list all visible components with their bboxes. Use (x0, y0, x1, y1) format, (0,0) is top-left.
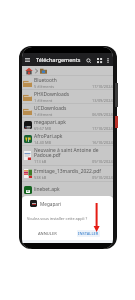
button[interactable]: UCDownloads (22, 104, 113, 117)
button[interactable]: linebet.apk (22, 182, 113, 196)
staticText: 09/10/2024 (92, 175, 113, 180)
button[interactable]: PHXDownloads (22, 90, 113, 103)
staticText: linebet.apk (34, 186, 60, 193)
staticText: Megapari (40, 201, 62, 207)
button[interactable]: AfroPari.apk (22, 132, 113, 145)
staticText: Bluetooth (34, 77, 57, 84)
staticText: 06/09/2024 (92, 112, 113, 117)
staticText: 5 éléments (34, 84, 55, 89)
staticText: 1 élément (34, 98, 53, 103)
staticText: 17/10/2024 (92, 126, 113, 131)
staticText: megapari.apk (34, 119, 66, 126)
button[interactable]: ANNULER (37, 230, 58, 237)
staticText: Téléchargements (36, 56, 81, 63)
staticText: 17/10/2024 (92, 84, 113, 89)
button[interactable]: View mode (95, 56, 103, 64)
button[interactable]: megapari.apk (22, 118, 113, 131)
staticText: 538 kB (34, 175, 47, 180)
button[interactable]: Ermitage_13mardis_2022.pdf (22, 166, 113, 181)
button[interactable]: More options (105, 57, 111, 63)
staticText: AfroPari.apk (34, 133, 63, 140)
staticText: 69.67 MB (34, 126, 52, 131)
staticText: 16/10/2024 (92, 140, 113, 145)
staticText: 14.40 MB (34, 140, 52, 145)
staticText: Voulez-vous installer cette appli ? (27, 216, 88, 221)
button[interactable]: Bluetooth (22, 76, 113, 89)
button[interactable]: Menu (24, 56, 31, 63)
button[interactable]: Neuvaine à saint Antoine de Padoue.pdf (22, 146, 113, 165)
staticText: Ermitage_13mardis_2022.pdf (34, 168, 101, 175)
staticText: ANNULER (38, 231, 57, 236)
staticText: UCDownloads (34, 105, 67, 112)
button[interactable]: Search (84, 56, 92, 64)
staticText: Neuvaine à saint Antoine de Padoue.pdf (34, 147, 113, 159)
staticText: PHXDownloads (34, 91, 70, 98)
staticText: 13/09/2024 (92, 98, 113, 103)
staticText: INSTALLER (78, 231, 99, 236)
staticText: 1 élément (34, 112, 53, 117)
button[interactable]: INSTALLER (77, 230, 100, 237)
staticText: 09/10/2024 (92, 159, 113, 164)
staticText: 113 kB (34, 159, 47, 164)
